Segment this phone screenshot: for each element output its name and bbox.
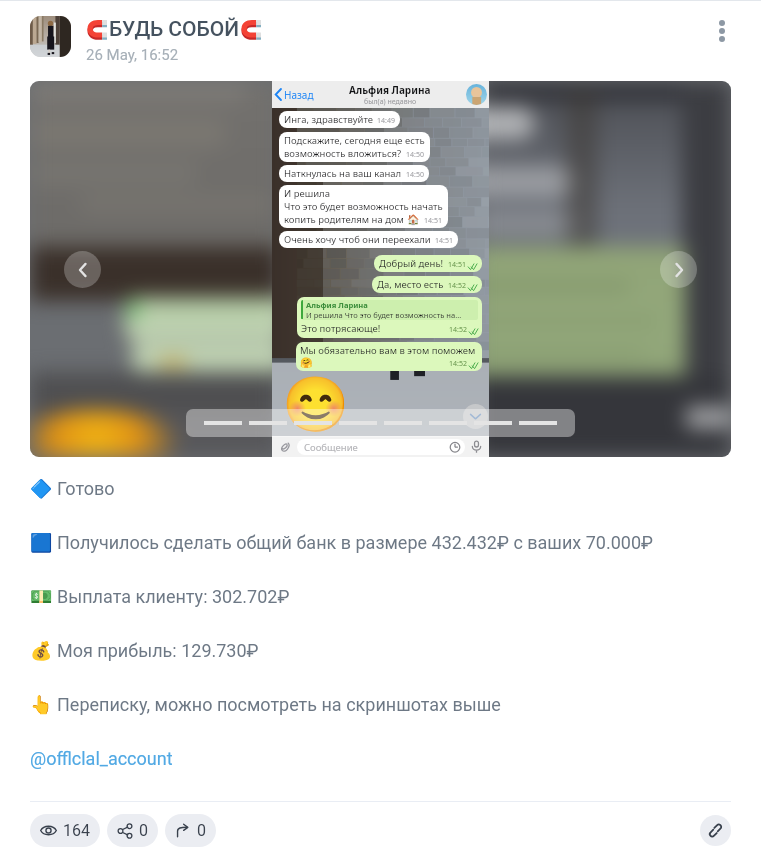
staticText: Очень хочу чтоб они переехали bbox=[284, 233, 431, 246]
staticText: Мы обязательно вам в этом поможем bbox=[300, 344, 476, 357]
button[interactable]: Next photo bbox=[660, 251, 697, 288]
button[interactable]: 0 bbox=[165, 814, 216, 847]
staticText: Инга, здравствуйте bbox=[284, 113, 373, 126]
staticText: 14:50 bbox=[406, 170, 424, 180]
staticText: 👆 bbox=[30, 694, 53, 715]
staticText: 🤗 bbox=[300, 357, 313, 369]
staticText: 🟦 bbox=[30, 532, 53, 553]
staticText: Сообщение bbox=[304, 441, 358, 454]
staticText: 14:51 bbox=[435, 236, 453, 246]
staticText: БУДЬ СОБОЙ bbox=[109, 17, 240, 42]
staticText: И решила bbox=[284, 187, 330, 200]
staticText: 14:52 bbox=[449, 325, 467, 335]
staticText: 💰 bbox=[30, 640, 53, 661]
button[interactable]: 164 bbox=[30, 814, 100, 847]
staticText: 0 bbox=[139, 821, 148, 840]
staticText: 0 bbox=[197, 821, 206, 840]
staticText: 🧲 bbox=[86, 19, 109, 40]
staticText: Да, место есть bbox=[377, 278, 444, 291]
button[interactable] bbox=[30, 16, 71, 57]
staticText: возможность вложиться? bbox=[284, 147, 402, 160]
staticText: 14:50 bbox=[406, 150, 424, 160]
staticText: 14:52 bbox=[448, 281, 466, 291]
staticText: Это потрясающе! bbox=[301, 322, 381, 335]
staticText: 26 May, 16:52 bbox=[86, 46, 179, 64]
staticText: Получилось сделать общий банк в размере … bbox=[57, 532, 653, 553]
staticText: Готово bbox=[57, 478, 115, 499]
staticText: Что это будет возможность начать bbox=[284, 200, 443, 213]
staticText: Выплата клиенту: 302.702₽ bbox=[57, 586, 290, 607]
staticText: 14:51 bbox=[448, 260, 466, 270]
staticText: 💵 bbox=[30, 586, 53, 607]
staticText: Моя прибыль: 129.730₽ bbox=[57, 640, 259, 661]
button[interactable]: Previous photo bbox=[64, 251, 101, 288]
staticText: 🏠 bbox=[407, 214, 420, 226]
staticText: Назад bbox=[284, 88, 314, 102]
staticText: 🔷 bbox=[30, 478, 53, 499]
staticText: Альфия Ларина bbox=[349, 83, 431, 97]
button[interactable]: Copy link bbox=[700, 815, 731, 846]
staticText: копить родителям на дом bbox=[284, 213, 407, 226]
button[interactable]: Scroll to bottom bbox=[463, 404, 488, 429]
staticText: 🧲 bbox=[240, 19, 263, 40]
staticText: 14:49 bbox=[377, 116, 395, 126]
button[interactable]: More options bbox=[707, 16, 737, 46]
staticText: Переписку, можно посмотреть на скриншота… bbox=[57, 694, 501, 715]
staticText: Наткнулась на ваш канал bbox=[284, 167, 402, 180]
staticText: был(а) недавно bbox=[364, 97, 417, 107]
staticText: И решила Что это будет возможность на… bbox=[306, 310, 462, 320]
button[interactable]: 0 bbox=[107, 814, 158, 847]
staticText: Подскажите, сегодня еще есть bbox=[284, 134, 425, 147]
staticText: 😊 bbox=[282, 373, 350, 436]
staticText: 164 bbox=[63, 821, 90, 840]
button[interactable]: Назад bbox=[30, 81, 731, 457]
staticText: Альфия Ларина bbox=[306, 300, 368, 310]
staticText: 14:51 bbox=[424, 216, 442, 226]
button[interactable]: @offlclal_account bbox=[30, 746, 173, 770]
staticText: @offlclal_account bbox=[30, 748, 173, 769]
staticText: 14:52 bbox=[449, 359, 467, 369]
staticText: Добрый день! bbox=[379, 257, 444, 270]
